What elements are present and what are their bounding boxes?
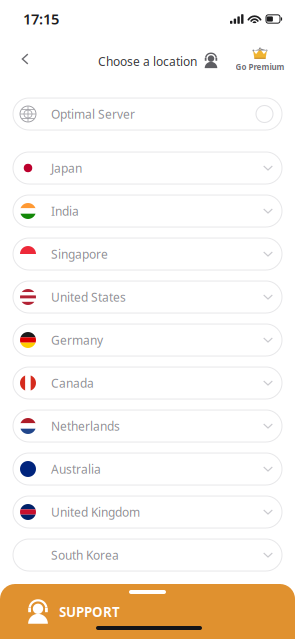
staticText: Japan <box>51 160 82 176</box>
staticText: Netherlands <box>51 418 120 434</box>
button[interactable]: Germany <box>13 324 282 356</box>
button[interactable]: Netherlands <box>13 410 282 442</box>
staticText: SUPPORT <box>59 603 120 621</box>
staticText: Germany <box>51 332 103 348</box>
staticText: Choose a location <box>98 53 197 69</box>
button[interactable]: Optimal Server <box>13 98 282 130</box>
staticText: Go Premium <box>235 62 284 72</box>
button[interactable]: Back <box>12 46 38 72</box>
button[interactable]: Singapore <box>13 238 282 270</box>
button[interactable]: United States <box>13 281 282 313</box>
button[interactable]: Australia <box>13 453 282 485</box>
button[interactable]: India <box>13 195 282 227</box>
staticText: 17:15 <box>23 9 59 28</box>
staticText: Canada <box>51 375 94 391</box>
staticText: India <box>51 203 79 219</box>
staticText: United States <box>51 289 126 305</box>
staticText: Optimal Server <box>51 106 135 122</box>
button[interactable]: Japan <box>13 152 282 184</box>
button[interactable]: South Korea <box>13 539 282 571</box>
button[interactable]: Canada <box>13 367 282 399</box>
staticText: Australia <box>51 461 101 477</box>
staticText: Singapore <box>51 246 108 262</box>
staticText: United Kingdom <box>51 504 140 520</box>
staticText: South Korea <box>51 547 119 563</box>
button[interactable]: Go Premium <box>230 47 290 71</box>
button[interactable]: SUPPORT <box>0 584 295 639</box>
button[interactable]: United Kingdom <box>13 496 282 528</box>
